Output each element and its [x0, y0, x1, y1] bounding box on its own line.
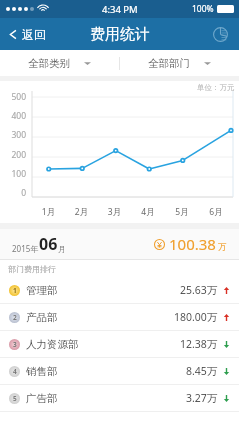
- staticText: 产品部: [26, 311, 58, 324]
- staticText: 5: [13, 394, 17, 403]
- staticText: 0: [0, 187, 26, 197]
- staticText: 1: [13, 286, 17, 295]
- staticText: 销售部: [26, 365, 58, 378]
- staticText: 万: [218, 242, 227, 253]
- staticText: 返回: [22, 27, 46, 42]
- staticText: 2月: [65, 206, 98, 218]
- staticText: 3: [13, 340, 17, 349]
- staticText: 400: [0, 110, 26, 120]
- staticText: 3月: [98, 206, 131, 218]
- staticText: 100: [0, 168, 26, 178]
- staticText: 500: [0, 91, 26, 101]
- staticText: 8.45万: [186, 364, 218, 378]
- button[interactable]: 4: [0, 358, 239, 384]
- staticText: 180.00万: [174, 310, 218, 324]
- staticText: 费用统计: [90, 25, 150, 44]
- staticText: 100%: [192, 3, 214, 15]
- staticText: 4:34 PM: [102, 3, 138, 16]
- staticText: 单位：万元: [197, 83, 235, 92]
- staticText: 全部类别: [28, 57, 70, 70]
- staticText: 3.27万: [186, 391, 218, 405]
- staticText: 100.38: [169, 234, 216, 254]
- staticText: 部门费用排行: [8, 264, 56, 274]
- button[interactable]: 返回: [0, 27, 54, 42]
- button[interactable]: 5: [0, 385, 239, 411]
- staticText: 12.38万: [180, 337, 218, 351]
- staticText: 06: [39, 233, 58, 255]
- staticText: 200: [0, 149, 26, 159]
- button[interactable]: 图表视图: [209, 23, 231, 45]
- staticText: 4月: [131, 206, 165, 218]
- staticText: 人力资源部: [26, 338, 79, 351]
- staticText: 5月: [165, 206, 199, 218]
- staticText: 2: [13, 313, 17, 322]
- staticText: 1月: [32, 206, 65, 218]
- button[interactable]: 3: [0, 331, 239, 357]
- button[interactable]: 全部部门: [120, 50, 239, 76]
- staticText: 4: [13, 367, 17, 376]
- button[interactable]: 1: [0, 277, 239, 303]
- staticText: 2015年: [12, 243, 39, 254]
- staticText: 300: [0, 129, 26, 139]
- button[interactable]: 2: [0, 304, 239, 330]
- button[interactable]: 全部类别: [0, 50, 119, 76]
- staticText: 6月: [199, 206, 233, 218]
- staticText: 全部部门: [148, 57, 190, 70]
- staticText: 25.63万: [180, 283, 218, 297]
- staticText: 广告部: [26, 392, 58, 405]
- staticText: 管理部: [26, 284, 58, 297]
- staticText: 月: [58, 244, 66, 254]
